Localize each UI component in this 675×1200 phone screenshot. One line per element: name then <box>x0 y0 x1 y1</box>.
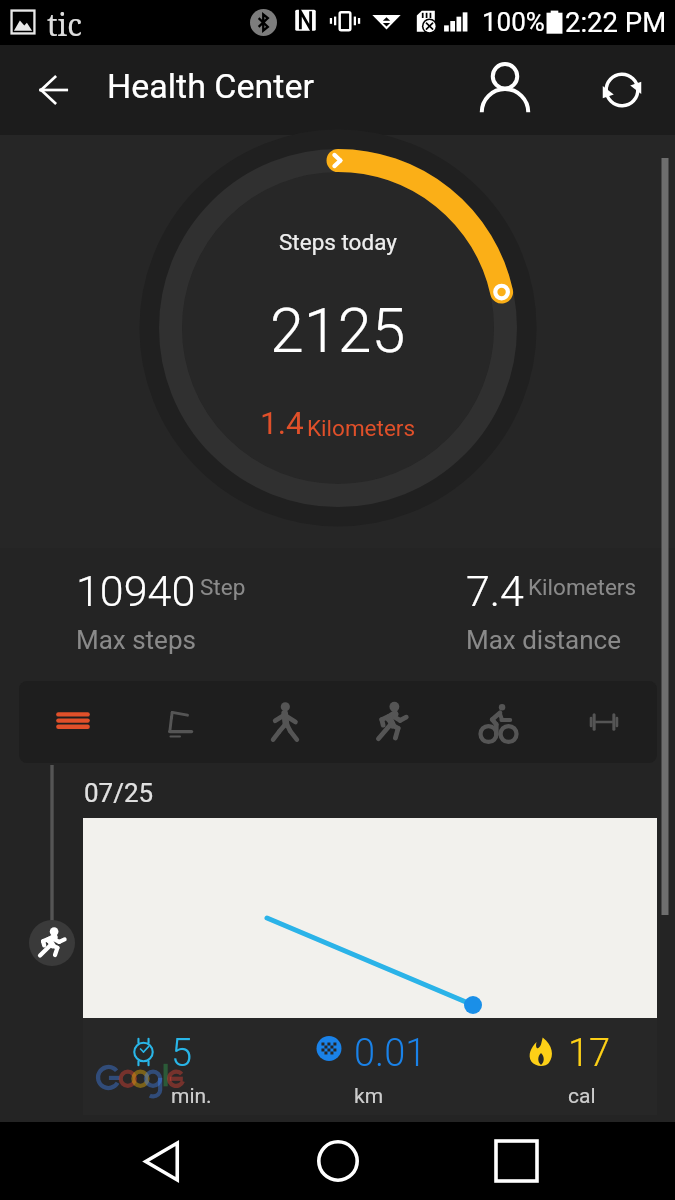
staticText: Step <box>200 574 246 600</box>
button[interactable]: All activities <box>19 681 126 763</box>
staticText: Kilometers <box>528 574 637 600</box>
staticText: 10940 <box>76 566 196 616</box>
staticText: 5 <box>171 1031 193 1076</box>
button[interactable]: Back <box>10 45 96 135</box>
button[interactable]: Treadmill <box>126 681 233 763</box>
staticText: 17 <box>568 1031 611 1076</box>
staticText: tic <box>47 4 82 45</box>
button[interactable]: Walking <box>233 681 339 763</box>
staticText: 100% <box>482 7 545 37</box>
staticText: 7.4 <box>466 566 524 616</box>
staticText: Steps today <box>279 229 397 255</box>
staticText: 0.01 <box>354 1031 427 1076</box>
button[interactable]: Running activity <box>29 920 75 966</box>
button[interactable]: 17 <box>527 1018 647 1115</box>
button[interactable]: Profile <box>468 45 542 135</box>
button[interactable]: 0.01 <box>316 1018 436 1115</box>
button[interactable]: Refresh <box>585 45 659 135</box>
staticText: 2:22 PM <box>565 6 667 38</box>
staticText: cal <box>568 1084 596 1109</box>
button[interactable]: Back <box>101 1122 221 1200</box>
button[interactable]: Home <box>278 1122 398 1200</box>
staticText: 1.4 <box>260 405 304 442</box>
button[interactable]: Workout <box>551 681 657 763</box>
staticText: km <box>354 1084 384 1109</box>
button[interactable]: 5 <box>83 818 657 1115</box>
staticText: Max steps <box>76 625 196 655</box>
staticText: 07/25 <box>84 778 154 808</box>
button[interactable]: Running <box>339 681 445 763</box>
button[interactable]: Recents <box>456 1122 576 1200</box>
button[interactable]: Cycling <box>445 681 551 763</box>
button[interactable]: 5 <box>133 1018 253 1115</box>
staticText: Health Center <box>107 66 314 106</box>
staticText: 2125 <box>270 295 406 366</box>
staticText: Max distance <box>466 625 621 655</box>
staticText: min. <box>171 1084 212 1109</box>
staticText: Kilometers <box>307 415 416 441</box>
